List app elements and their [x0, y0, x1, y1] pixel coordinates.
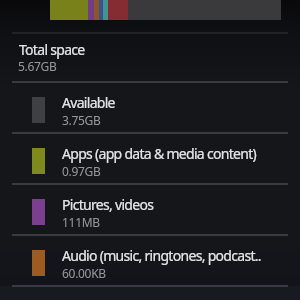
staticText: Apps (app data & media content) — [62, 144, 257, 163]
staticText: 5.67GB — [18, 58, 57, 74]
button[interactable]: Available — [0, 83, 300, 133]
staticText: Total space — [19, 40, 85, 59]
button[interactable]: Total space — [0, 34, 300, 80]
button[interactable]: Pictures, videos — [0, 185, 300, 235]
button[interactable]: Apps (app data & media content) — [0, 134, 300, 184]
staticText: 3.75GB — [62, 112, 101, 128]
staticText: Pictures, videos — [62, 195, 154, 214]
button[interactable]: Audio (music, ringtones, podcast.. — [0, 236, 300, 286]
staticText: Audio (music, ringtones, podcast.. — [62, 246, 261, 265]
staticText: 60.00KB — [62, 265, 106, 281]
staticText: Available — [62, 93, 115, 112]
staticText: 111MB — [62, 214, 100, 230]
staticText: 0.97GB — [62, 163, 101, 179]
